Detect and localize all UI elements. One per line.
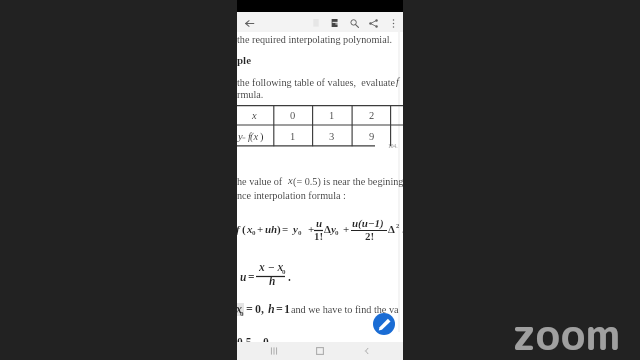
staticText: the required interpolating polynomial. bbox=[237, 34, 393, 45]
staticText: = bbox=[282, 223, 289, 235]
button[interactable]: Search bbox=[347, 16, 361, 30]
staticText: f bbox=[248, 131, 251, 143]
staticText: 0 bbox=[252, 229, 256, 237]
staticText: h bbox=[268, 302, 275, 315]
staticText: = bbox=[248, 271, 255, 284]
staticText: = bbox=[246, 302, 253, 315]
staticText: ( bbox=[242, 223, 246, 235]
staticText: 1 bbox=[284, 302, 290, 315]
button[interactable]: Back bbox=[359, 343, 375, 359]
staticText: nce interpolation formula : bbox=[237, 190, 346, 201]
staticText: 0 bbox=[335, 229, 339, 237]
staticText: Δ bbox=[388, 223, 395, 235]
button[interactable]: More options bbox=[386, 16, 400, 30]
staticText: ple bbox=[237, 54, 252, 66]
button[interactable]: Share bbox=[366, 16, 380, 30]
staticText: 9 bbox=[369, 131, 375, 143]
button[interactable]: Recents bbox=[266, 343, 282, 359]
staticText: 1! bbox=[314, 230, 324, 242]
staticText: . bbox=[288, 271, 291, 284]
staticText: + bbox=[257, 223, 264, 235]
staticText: h bbox=[269, 275, 276, 288]
staticText: y bbox=[238, 131, 243, 143]
staticText: x bbox=[236, 302, 242, 315]
staticText: = bbox=[276, 302, 283, 315]
staticText: 0, bbox=[255, 302, 264, 315]
staticText: 104. bbox=[388, 143, 398, 149]
staticText: 2! bbox=[365, 230, 375, 242]
staticText: 1 bbox=[329, 110, 335, 122]
staticText: 2 bbox=[369, 110, 375, 122]
staticText: x bbox=[252, 110, 257, 122]
staticText: the following table of values, evaluate bbox=[237, 77, 396, 88]
staticText: zoom bbox=[512, 304, 621, 360]
staticText: f bbox=[396, 76, 399, 88]
staticText: uh bbox=[265, 223, 278, 235]
button[interactable]: Home bbox=[312, 343, 328, 359]
staticText: 1 bbox=[290, 131, 296, 143]
staticText: u(u−1) bbox=[352, 217, 384, 229]
staticText: y bbox=[293, 223, 298, 235]
staticText: y bbox=[331, 223, 336, 235]
staticText: = bbox=[242, 134, 246, 141]
staticText: x bbox=[288, 175, 293, 187]
staticText: he value of bbox=[237, 176, 283, 187]
staticText: f bbox=[236, 223, 240, 235]
staticText: u bbox=[240, 271, 247, 284]
staticText: + bbox=[343, 223, 350, 235]
staticText: Δ bbox=[324, 223, 331, 235]
staticText: 0 bbox=[298, 229, 302, 237]
staticText: ) bbox=[277, 223, 281, 235]
staticText: u bbox=[316, 217, 323, 229]
staticText: 0 bbox=[290, 110, 296, 122]
staticText: rmula. bbox=[237, 89, 264, 100]
staticText: 0 bbox=[240, 310, 244, 318]
staticText: 3 bbox=[329, 131, 335, 143]
staticText: . bbox=[402, 223, 405, 235]
staticText: (x bbox=[250, 131, 259, 143]
staticText: ) bbox=[260, 131, 264, 143]
staticText: 0 bbox=[282, 268, 286, 276]
staticText: 0.5 – 0 bbox=[237, 336, 269, 349]
staticText: x − x bbox=[259, 261, 284, 274]
button[interactable]: Notes bbox=[328, 16, 342, 30]
staticText: + bbox=[308, 223, 315, 235]
button[interactable]: Edit bbox=[373, 313, 395, 335]
staticText: and we have to find the va bbox=[291, 304, 399, 315]
button[interactable]: Bookmark bbox=[309, 16, 323, 30]
button[interactable]: Back bbox=[242, 16, 256, 30]
staticText: (= 0.5) is near the begining bbox=[293, 176, 404, 187]
staticText: x bbox=[247, 223, 253, 235]
staticText: 2 bbox=[396, 222, 400, 229]
